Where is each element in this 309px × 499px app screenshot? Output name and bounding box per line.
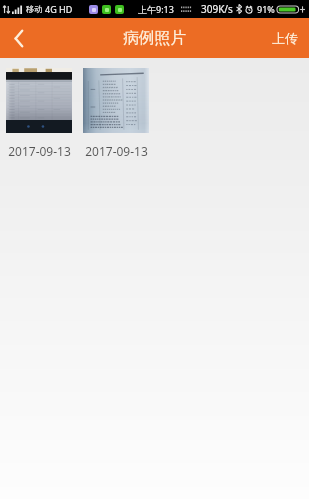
staticText: 病例照片: [123, 28, 187, 48]
staticText: 4G HD: [45, 3, 73, 15]
staticText: 2017-09-13: [85, 143, 148, 159]
button[interactable]: 2017-09-13: [6, 68, 72, 159]
staticText: 2017-09-13: [8, 143, 71, 159]
button[interactable]: Back: [0, 19, 38, 57]
staticText: 309K/s: [201, 2, 233, 16]
button[interactable]: 上传: [261, 21, 309, 55]
staticText: 91%: [257, 3, 275, 15]
button[interactable]: 2017-09-13: [83, 68, 149, 159]
staticText: 上午9:13: [138, 3, 174, 15]
staticText: 移动: [26, 4, 43, 14]
staticText: 上传: [272, 30, 298, 46]
